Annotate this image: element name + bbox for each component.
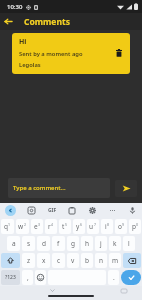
staticText: v — [71, 256, 75, 265]
staticText: 4 — [51, 222, 54, 227]
button[interactable]: Shift — [1, 253, 20, 268]
button[interactable]: q — [1, 219, 14, 234]
button[interactable]: Back — [0, 13, 17, 30]
staticText: 2 — [24, 222, 27, 227]
staticText: z — [27, 256, 31, 265]
staticText: g — [71, 239, 75, 248]
staticText: f — [57, 239, 60, 248]
staticText: n — [99, 256, 104, 265]
button[interactable]: Hi — [12, 33, 130, 74]
staticText: q — [4, 222, 8, 231]
staticText: t — [62, 222, 65, 231]
button[interactable]: h — [81, 236, 93, 251]
staticText: j — [100, 239, 102, 248]
staticText: Legolas — [19, 61, 41, 69]
button[interactable]: . — [108, 270, 119, 285]
button[interactable]: z — [22, 253, 35, 268]
staticText: 3 — [38, 222, 41, 227]
button[interactable]: o — [115, 219, 127, 234]
button[interactable]: More options — [102, 203, 122, 218]
staticText: l — [128, 239, 130, 248]
button[interactable]: Search — [21, 203, 42, 218]
staticText: o — [118, 222, 122, 231]
button[interactable]: b — [81, 253, 93, 268]
staticText: s — [27, 239, 31, 248]
staticText: k — [113, 239, 117, 248]
button[interactable]: k — [109, 236, 121, 251]
button[interactable]: x — [37, 253, 50, 268]
button[interactable]: Backspace — [123, 253, 141, 268]
button[interactable]: t — [59, 219, 71, 234]
button[interactable]: Settings — [82, 203, 102, 218]
button[interactable]: c — [52, 253, 65, 268]
button[interactable]: d — [37, 236, 50, 251]
staticText: 8 — [107, 222, 110, 227]
staticText: , — [27, 273, 29, 282]
button[interactable]: Voice input — [122, 203, 142, 218]
staticText: u — [89, 222, 94, 231]
button[interactable]: Type a comment... — [8, 178, 110, 198]
staticText: 10:30 — [7, 3, 23, 11]
staticText: x — [42, 256, 46, 265]
button[interactable]: Expand — [0, 203, 21, 218]
staticText: GIF — [48, 207, 57, 214]
button[interactable]: m — [109, 253, 121, 268]
button[interactable]: Back — [35, 288, 70, 293]
button[interactable]: Keyboard switch — [106, 289, 142, 293]
staticText: i — [105, 222, 107, 231]
staticText: 1 — [8, 222, 11, 227]
staticText: w — [18, 222, 24, 231]
staticText: y — [76, 222, 80, 231]
button[interactable]: Delete comment — [112, 46, 126, 60]
staticText: h — [85, 239, 90, 248]
button[interactable]: j — [95, 236, 107, 251]
staticText: r — [48, 222, 51, 231]
staticText: 0 — [136, 222, 139, 227]
button[interactable]: l — [123, 236, 135, 251]
button[interactable]: f — [52, 236, 65, 251]
button[interactable]: y — [73, 219, 85, 234]
button[interactable]: n — [95, 253, 107, 268]
button[interactable]: , — [22, 270, 33, 285]
button[interactable]: Clipboard — [62, 203, 82, 218]
button[interactable]: g — [67, 236, 79, 251]
staticText: 9 — [122, 222, 125, 227]
staticText: m — [112, 256, 119, 265]
button[interactable]: Enter — [121, 270, 141, 285]
staticText: e — [34, 222, 38, 231]
staticText: Type a comment... — [13, 184, 66, 192]
staticText: 5 — [65, 222, 68, 227]
button[interactable]: p — [129, 219, 141, 234]
staticText: Sent by a moment ago — [19, 50, 83, 58]
button[interactable]: e — [31, 219, 43, 234]
button[interactable]: r — [45, 219, 57, 234]
button[interactable]: Send — [115, 180, 137, 197]
button[interactable]: ?123 — [1, 270, 20, 285]
button[interactable]: Emoji — [35, 270, 46, 285]
button[interactable]: w — [16, 219, 29, 234]
button[interactable]: s — [22, 236, 35, 251]
staticText: Hi — [19, 37, 27, 47]
staticText: . — [113, 273, 115, 282]
staticText: d — [42, 239, 46, 248]
staticText: ?123 — [5, 274, 16, 281]
button[interactable]: a — [7, 236, 20, 251]
staticText: 7 — [94, 222, 97, 227]
staticText: a — [12, 239, 16, 248]
button[interactable]: u — [87, 219, 99, 234]
button[interactable]: GIF — [42, 203, 62, 218]
staticText: Comments — [24, 16, 70, 28]
button[interactable]: v — [67, 253, 79, 268]
button[interactable]: i — [101, 219, 113, 234]
staticText: 6 — [80, 222, 83, 227]
staticText: c — [57, 256, 61, 265]
staticText: p — [132, 222, 136, 231]
staticText: b — [85, 256, 89, 265]
